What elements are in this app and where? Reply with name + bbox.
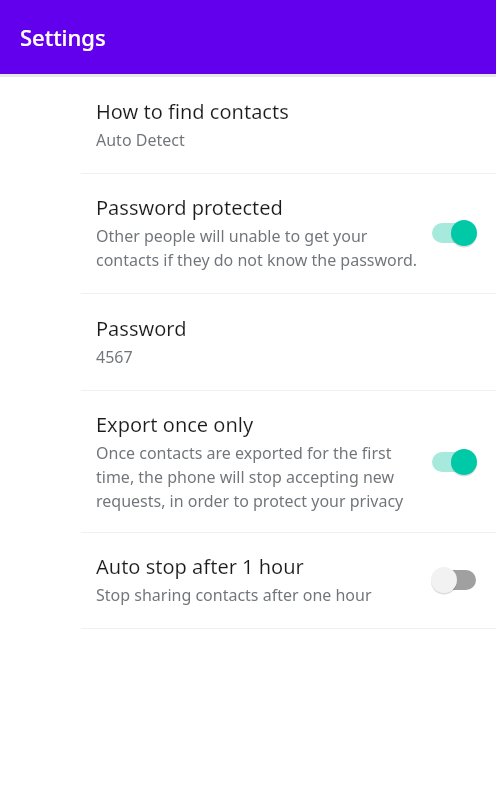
staticText: 4567 (96, 346, 133, 368)
button[interactable]: Password (0, 294, 496, 390)
button[interactable]: Auto stop after 1 hour (0, 533, 496, 628)
button[interactable]: Export once only toggle (426, 445, 482, 479)
button[interactable]: How to find contacts (0, 77, 496, 173)
staticText: Once contacts are exported for the first… (96, 442, 418, 512)
staticText: Stop sharing contacts after one hour (96, 584, 372, 606)
staticText: How to find contacts (96, 98, 289, 125)
staticText: Settings (20, 22, 106, 52)
button[interactable]: Password protected toggle (426, 216, 482, 250)
staticText: Other people will unable to get your con… (96, 225, 418, 271)
staticText: Auto Detect (96, 129, 185, 151)
button[interactable]: Password protected (0, 174, 496, 293)
staticText: Password protected (96, 194, 283, 221)
button[interactable]: Export once only (0, 391, 496, 532)
staticText: Auto stop after 1 hour (96, 553, 304, 580)
button[interactable]: Auto stop after 1 hour toggle (426, 563, 482, 597)
staticText: Export once only (96, 411, 254, 438)
staticText: Password (96, 315, 187, 342)
